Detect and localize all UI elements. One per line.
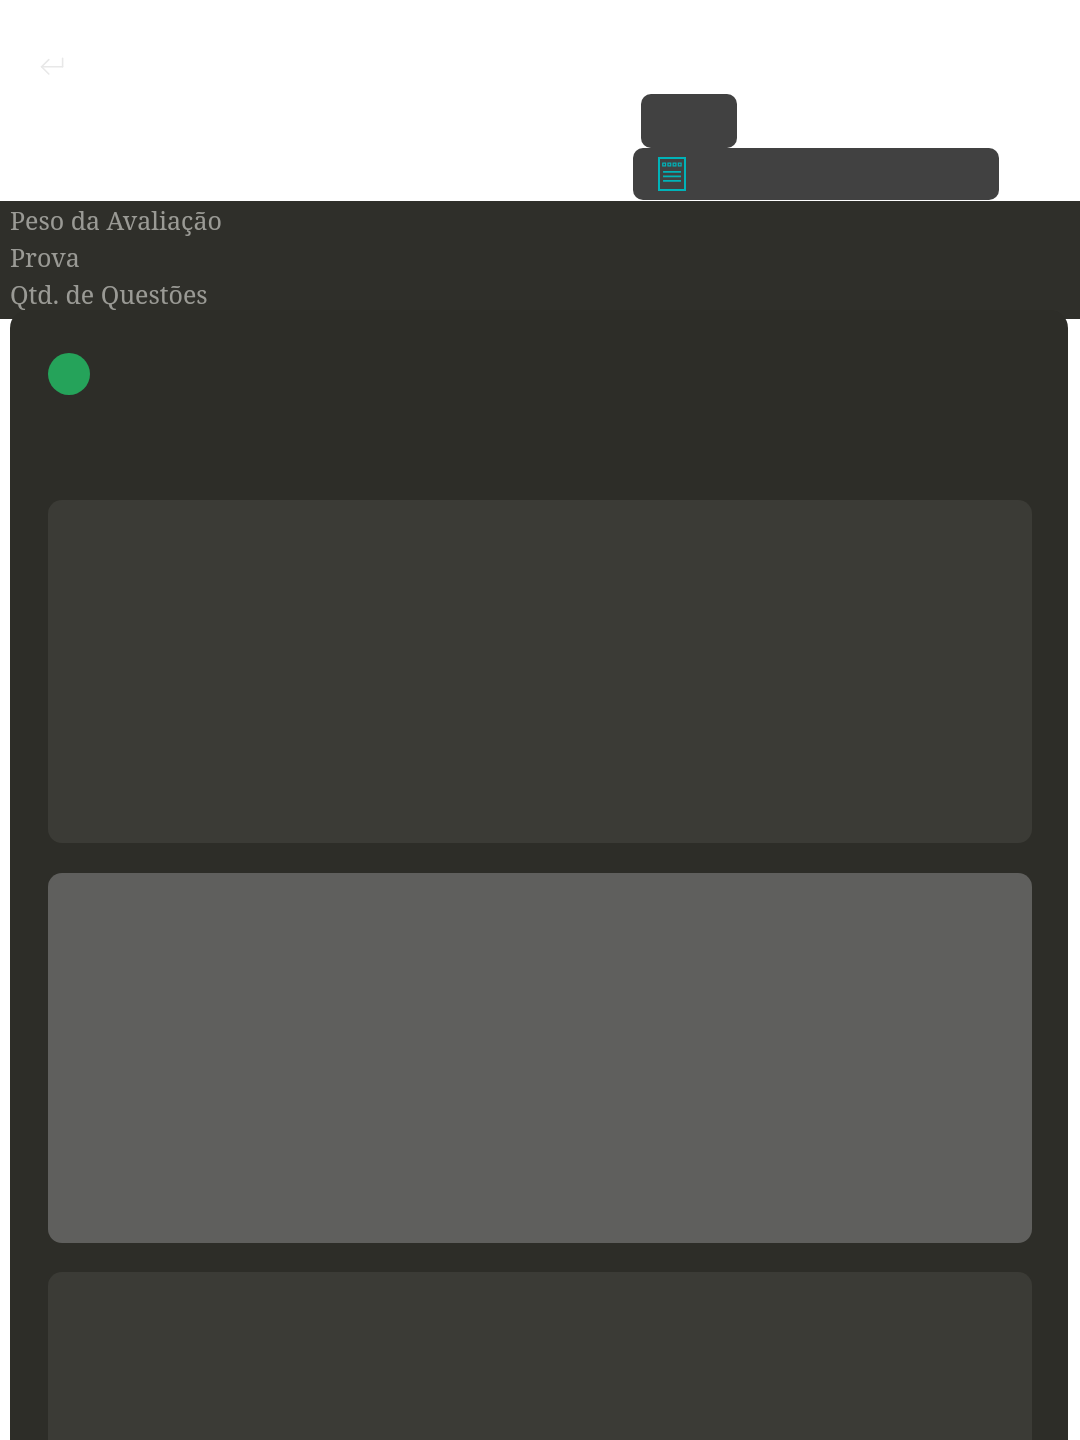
staticText: Prova (10, 240, 80, 274)
button[interactable]: Assessment (633, 148, 999, 200)
button[interactable]: Back (30, 48, 70, 88)
button[interactable]: Status (48, 353, 90, 395)
staticText: Qtd. de Questões (10, 277, 208, 311)
staticText: Peso da Avaliação (10, 203, 222, 237)
button[interactable]: Menu chip (641, 94, 737, 148)
button[interactable]: Assessment (658, 157, 686, 191)
